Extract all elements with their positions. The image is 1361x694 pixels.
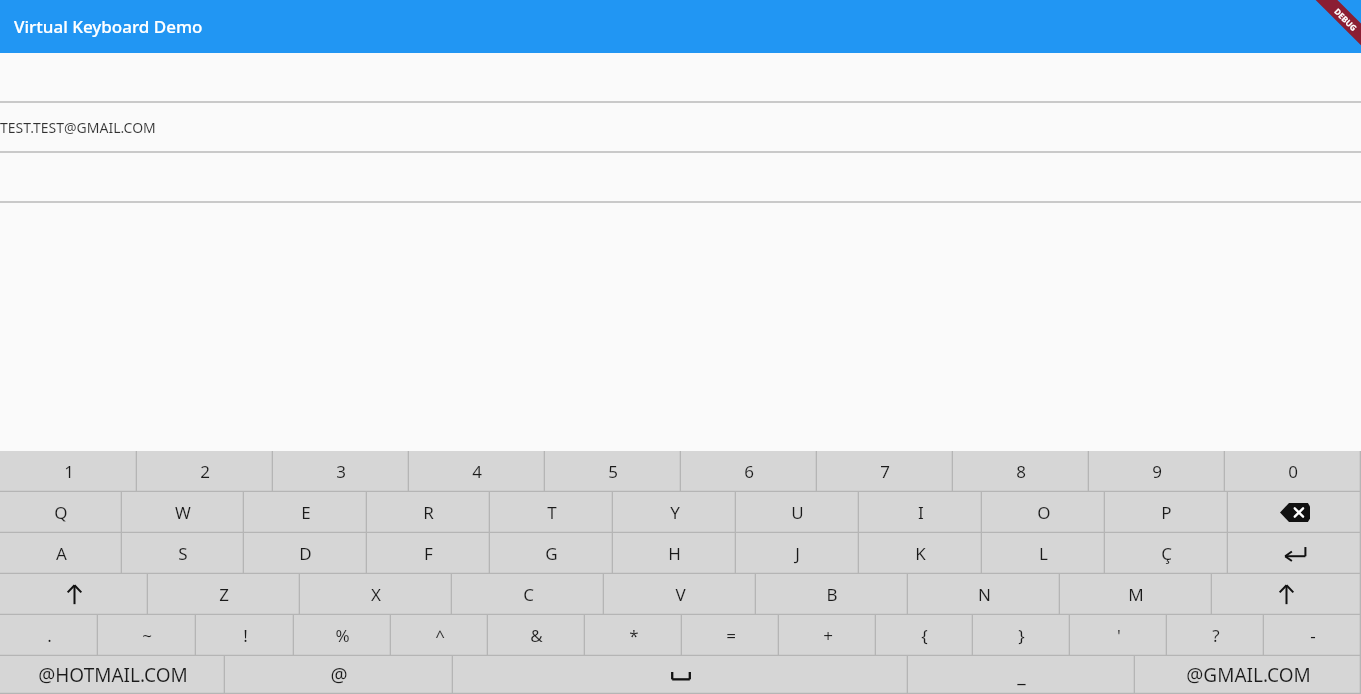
- staticText: U: [791, 501, 804, 524]
- staticText: ?: [1212, 624, 1220, 647]
- staticText: R: [423, 501, 434, 524]
- staticText: S: [178, 542, 188, 565]
- button[interactable]: Ç: [1105, 533, 1228, 574]
- button[interactable]: @GMAIL.COM: [1135, 656, 1361, 694]
- button[interactable]: .: [0, 615, 98, 656]
- button[interactable]: P: [1105, 492, 1228, 533]
- button[interactable]: L: [982, 533, 1105, 574]
- button[interactable]: R: [367, 492, 490, 533]
- button[interactable]: B: [756, 574, 908, 615]
- staticText: 2: [200, 460, 210, 483]
- staticText: N: [978, 583, 991, 606]
- button[interactable]: C: [452, 574, 604, 615]
- button[interactable]: +: [779, 615, 876, 656]
- staticText: 0: [1288, 460, 1298, 483]
- button[interactable]: }: [973, 615, 1070, 656]
- button[interactable]: M: [1060, 574, 1212, 615]
- button[interactable]: {: [876, 615, 973, 656]
- staticText: G: [545, 542, 558, 565]
- staticText: 1: [64, 460, 74, 483]
- staticText: F: [424, 542, 433, 565]
- staticText: M: [1128, 583, 1144, 606]
- button[interactable]: Shift: [1212, 574, 1361, 615]
- staticText: {: [921, 624, 928, 647]
- staticText: 9: [1152, 460, 1162, 483]
- button[interactable]: Backspace: [1228, 492, 1361, 533]
- button[interactable]: @HOTMAIL.COM: [0, 656, 225, 694]
- staticText: 7: [880, 460, 890, 483]
- button[interactable]: &: [488, 615, 585, 656]
- button[interactable]: N: [908, 574, 1060, 615]
- staticText: Virtual Keyboard Demo: [14, 15, 203, 38]
- button[interactable]: =: [682, 615, 779, 656]
- button[interactable]: 8: [953, 451, 1089, 492]
- button[interactable]: Q: [0, 492, 122, 533]
- staticText: @: [330, 662, 348, 688]
- staticText: 8: [1016, 460, 1026, 483]
- button[interactable]: 7: [817, 451, 953, 492]
- button[interactable]: Y: [613, 492, 736, 533]
- button[interactable]: %: [294, 615, 391, 656]
- button[interactable]: E: [244, 492, 367, 533]
- button[interactable]: K: [859, 533, 982, 574]
- staticText: O: [1037, 501, 1051, 524]
- button[interactable]: ~: [98, 615, 196, 656]
- button[interactable]: O: [982, 492, 1105, 533]
- button[interactable]: Enter: [1228, 533, 1361, 574]
- button[interactable]: ?: [1167, 615, 1264, 656]
- staticText: Q: [54, 501, 68, 524]
- staticText: B: [826, 583, 838, 606]
- button[interactable]: H: [613, 533, 736, 574]
- staticText: +: [823, 624, 833, 647]
- staticText: H: [668, 542, 681, 565]
- button[interactable]: Z: [148, 574, 300, 615]
- staticText: DEBUG: [1332, 6, 1360, 33]
- button[interactable]: 4: [409, 451, 545, 492]
- button[interactable]: _: [908, 656, 1135, 694]
- staticText: A: [56, 542, 67, 565]
- button[interactable]: 0: [1225, 451, 1361, 492]
- button[interactable]: ': [1070, 615, 1167, 656]
- staticText: 3: [336, 460, 346, 483]
- button[interactable]: TEST.TEST@GMAIL.COM: [0, 103, 1361, 151]
- button[interactable]: 3: [273, 451, 409, 492]
- staticText: I: [918, 501, 924, 524]
- button[interactable]: !: [196, 615, 294, 656]
- staticText: P: [1161, 501, 1172, 524]
- button[interactable]: A: [0, 533, 122, 574]
- button[interactable]: ^: [391, 615, 488, 656]
- button[interactable]: 5: [545, 451, 681, 492]
- button[interactable]: U: [736, 492, 859, 533]
- button[interactable]: @: [225, 656, 453, 694]
- button[interactable]: X: [300, 574, 452, 615]
- button[interactable]: D: [244, 533, 367, 574]
- button[interactable]: 2: [137, 451, 273, 492]
- staticText: @HOTMAIL.COM: [38, 662, 188, 688]
- staticText: C: [523, 583, 534, 606]
- button[interactable]: -: [1264, 615, 1361, 656]
- staticText: ^: [435, 624, 445, 647]
- button[interactable]: 9: [1089, 451, 1225, 492]
- button[interactable]: V: [604, 574, 756, 615]
- staticText: %: [335, 624, 350, 647]
- button[interactable]: 6: [681, 451, 817, 492]
- button[interactable]: G: [490, 533, 613, 574]
- button[interactable]: *: [585, 615, 682, 656]
- button[interactable]: Shift: [0, 574, 148, 615]
- button[interactable]: J: [736, 533, 859, 574]
- staticText: _: [1017, 662, 1026, 688]
- staticText: .: [47, 624, 52, 647]
- button[interactable]: I: [859, 492, 982, 533]
- staticText: K: [915, 542, 926, 565]
- button[interactable]: T: [490, 492, 613, 533]
- button[interactable]: 1: [0, 451, 137, 492]
- button[interactable]: W: [122, 492, 244, 533]
- button[interactable]: Space: [453, 656, 908, 694]
- button[interactable]: S: [122, 533, 244, 574]
- staticText: !: [243, 624, 248, 647]
- button[interactable]: F: [367, 533, 490, 574]
- staticText: E: [301, 501, 311, 524]
- staticText: *: [629, 624, 639, 647]
